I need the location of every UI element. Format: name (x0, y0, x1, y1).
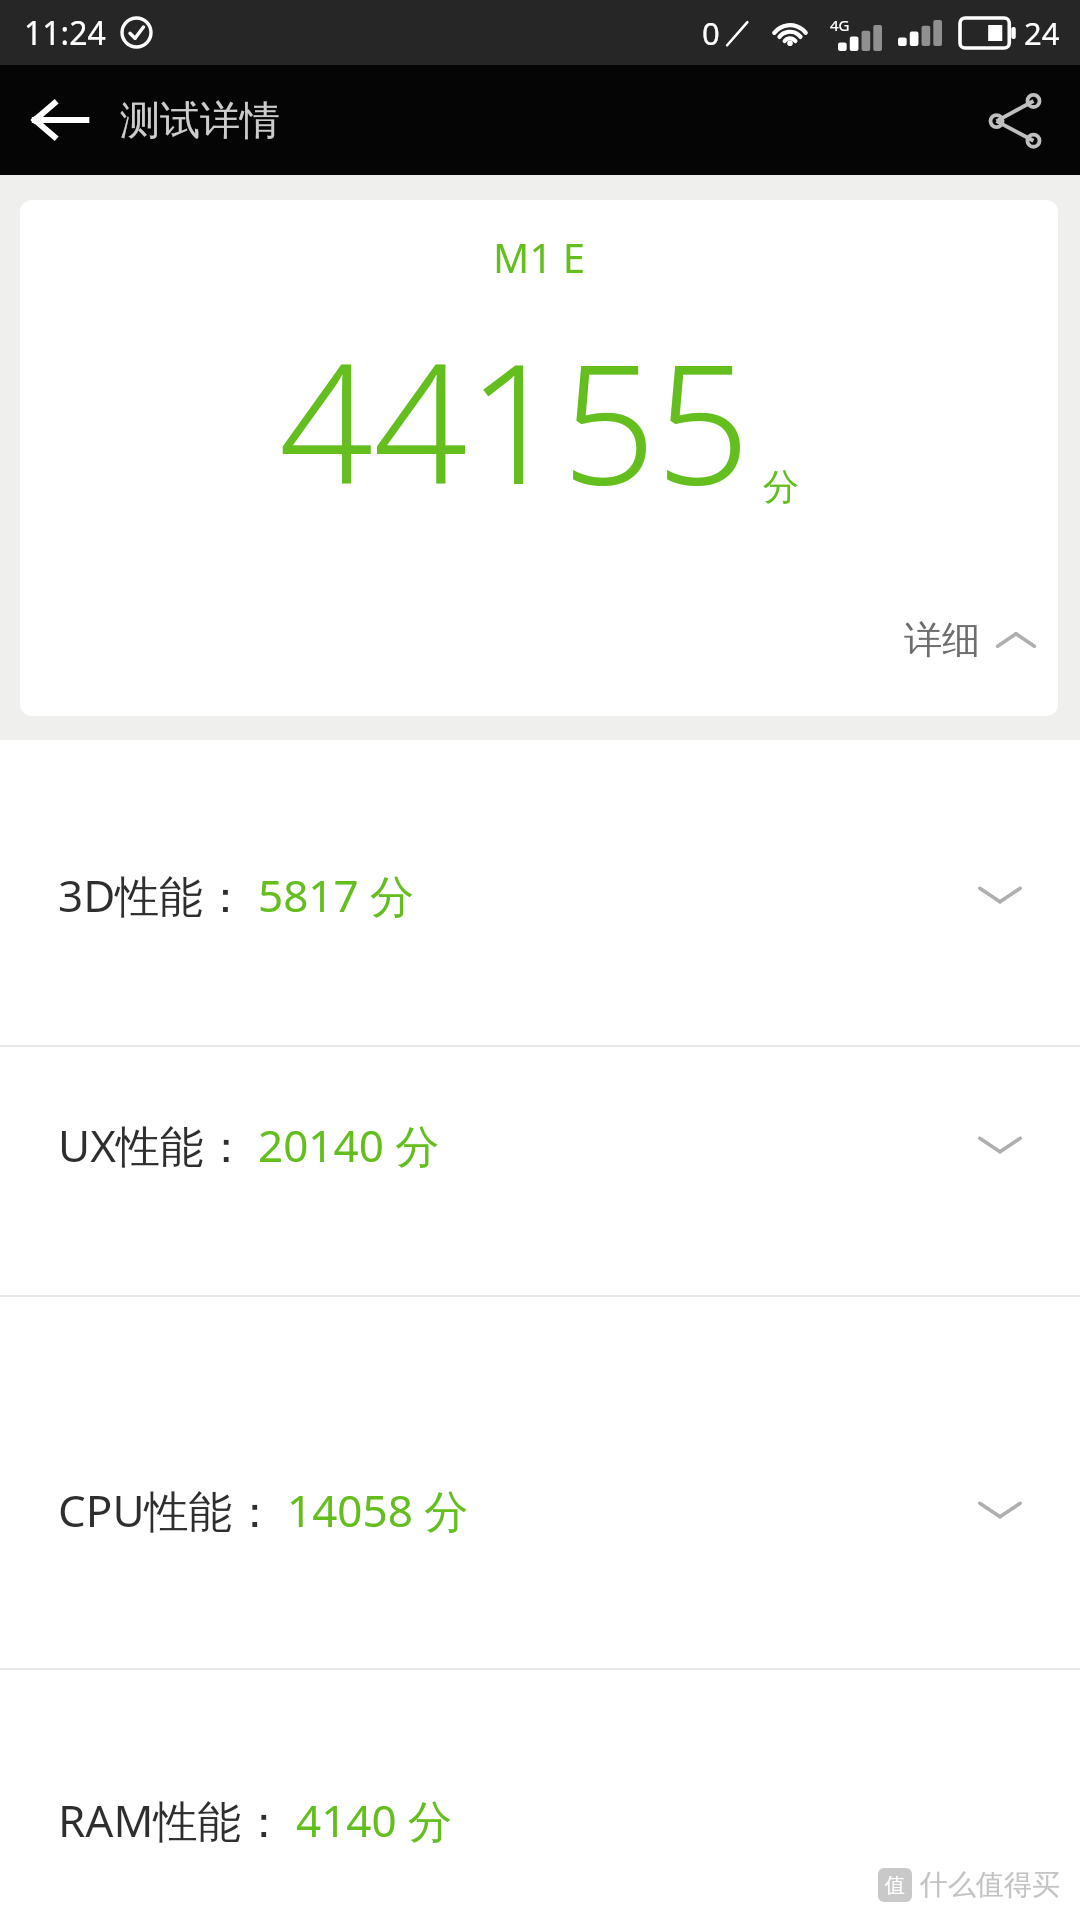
staticText: 分 (763, 464, 799, 509)
staticText: 20140 分 (258, 1115, 440, 1175)
button[interactable]: Back (0, 65, 120, 175)
button[interactable]: M1 E (20, 200, 1058, 716)
button[interactable]: 详细 (904, 616, 1036, 664)
staticText: 什么值得买 (920, 1867, 1060, 1902)
staticText: 详细 (904, 616, 980, 664)
button[interactable]: RAM性能： (0, 1753, 1080, 1887)
button[interactable]: CPU性能： (0, 1443, 1080, 1577)
staticText: 0 (702, 12, 720, 54)
staticText: 3D性能： (58, 865, 248, 925)
button[interactable]: Share (950, 65, 1080, 175)
staticText: 4140 分 (296, 1790, 453, 1850)
button[interactable]: UX性能： (0, 1078, 1080, 1212)
staticText: RAM性能： (58, 1790, 286, 1850)
staticText: 值 (885, 1873, 905, 1898)
staticText: CPU性能： (58, 1480, 277, 1540)
button[interactable]: 3D性能： (0, 828, 1080, 962)
staticText: 5817 分 (258, 865, 415, 925)
staticText: 11:24 (24, 11, 106, 55)
staticText: 14058 分 (287, 1480, 469, 1540)
staticText: 4G (830, 15, 850, 35)
staticText: 测试详情 (120, 95, 280, 145)
staticText: UX性能： (58, 1115, 248, 1175)
staticText: 24 (1024, 12, 1060, 54)
staticText: 44155 (279, 308, 751, 533)
staticText: M1 E (20, 230, 1058, 284)
